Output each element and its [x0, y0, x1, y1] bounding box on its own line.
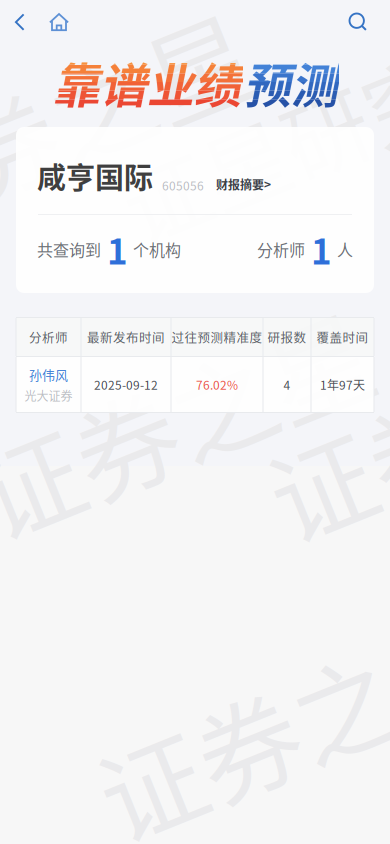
- staticText: 分析师: [257, 238, 305, 261]
- staticText: 605056: [162, 177, 204, 194]
- staticText: 咸亨国际: [37, 155, 153, 197]
- staticText: 孙伟风: [29, 365, 68, 384]
- staticText: 证券之星: [0, 665, 383, 815]
- staticText: 分析师: [29, 328, 68, 346]
- staticText: 个机构: [133, 238, 181, 261]
- button[interactable]: Back: [3, 0, 37, 44]
- button[interactable]: Home: [37, 0, 81, 44]
- staticText: 证券之星: [0, 17, 383, 167]
- button[interactable]: Search: [336, 0, 380, 44]
- staticText: 过往预测精准度: [171, 328, 262, 346]
- staticText: 共查询到: [37, 238, 101, 261]
- staticText: 76.02%: [196, 376, 238, 393]
- staticText: 证券之星: [237, 451, 390, 601]
- staticText: 人: [337, 238, 353, 261]
- staticText: 1: [107, 224, 128, 275]
- staticText: 最新发布时间: [87, 328, 165, 346]
- staticText: 光大证券: [24, 387, 72, 404]
- button[interactable]: 财报摘要>: [204, 176, 271, 197]
- staticText: 1: [311, 224, 332, 275]
- staticText: 证星研究院: [210, 138, 390, 262]
- staticText: 覆盖时间: [316, 328, 368, 346]
- staticText: 研报数: [267, 328, 306, 346]
- staticText: 证券之星: [0, 339, 383, 489]
- staticText: 财报摘要>: [216, 176, 271, 193]
- staticText: 1年97天: [320, 376, 365, 393]
- staticText: 2025-09-12: [94, 376, 158, 393]
- staticText: 4: [283, 376, 290, 393]
